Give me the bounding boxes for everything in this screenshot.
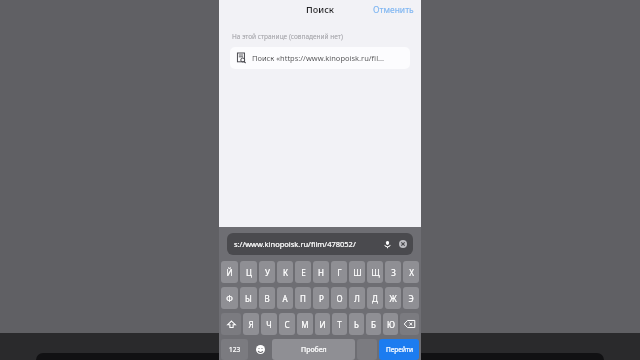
button[interactable]: Х bbox=[403, 261, 419, 283]
button[interactable]: Ь bbox=[349, 313, 364, 335]
button[interactable]: Б bbox=[366, 313, 381, 335]
staticText: Ч bbox=[266, 319, 272, 330]
staticText: Р bbox=[319, 293, 324, 304]
button[interactable]: Ш bbox=[349, 261, 365, 283]
staticText: Ж bbox=[389, 293, 397, 304]
button[interactable]: В bbox=[259, 287, 275, 309]
staticText: Пробел bbox=[301, 345, 327, 355]
staticText: Я bbox=[248, 319, 254, 330]
button[interactable]: Щ bbox=[367, 261, 383, 283]
staticText: М bbox=[301, 319, 309, 330]
staticText: Ы bbox=[245, 293, 252, 304]
staticText: Поиск «https://www.kinopoisk.ru/fil... bbox=[252, 53, 385, 63]
button[interactable]: Н bbox=[313, 261, 329, 283]
staticText: Отменить bbox=[373, 4, 414, 16]
button[interactable]: s://www.kinopoisk.ru/film/478052/ bbox=[227, 233, 413, 255]
staticText: Н bbox=[318, 267, 324, 278]
staticText: Б bbox=[371, 319, 376, 330]
staticText: Ю bbox=[387, 319, 395, 330]
staticText: Г bbox=[337, 267, 342, 278]
button[interactable]: М bbox=[297, 313, 313, 335]
staticText: О bbox=[336, 293, 343, 304]
button[interactable]: Clear text bbox=[399, 240, 407, 248]
staticText: Ь bbox=[354, 319, 359, 330]
staticText: Перейти bbox=[386, 345, 413, 354]
staticText: Й bbox=[226, 267, 233, 278]
button[interactable]: Г bbox=[331, 261, 347, 283]
button[interactable]: К bbox=[277, 261, 293, 283]
staticText: Поиск bbox=[306, 3, 335, 15]
staticText: П bbox=[300, 293, 306, 304]
button[interactable]: Dictation bbox=[383, 240, 392, 249]
button[interactable]: Ц bbox=[240, 261, 257, 283]
button[interactable]: Emoji bbox=[250, 339, 270, 360]
button[interactable]: Ч bbox=[261, 313, 277, 335]
button[interactable]: Ы bbox=[240, 287, 257, 309]
staticText: И bbox=[319, 319, 326, 330]
button[interactable]: О bbox=[331, 287, 347, 309]
button[interactable]: Л bbox=[349, 287, 365, 309]
button[interactable]: Р bbox=[313, 287, 329, 309]
staticText: 123 bbox=[229, 345, 241, 354]
staticText: К bbox=[283, 267, 288, 278]
staticText: У bbox=[265, 267, 270, 278]
button[interactable]: Отменить bbox=[366, 1, 421, 19]
button[interactable]: Ж bbox=[385, 287, 401, 309]
staticText: Д bbox=[372, 293, 378, 304]
staticText: Ш bbox=[353, 267, 362, 278]
staticText: В bbox=[264, 293, 270, 304]
button[interactable]: Ю bbox=[383, 313, 398, 335]
button[interactable]: Й bbox=[221, 261, 238, 283]
staticText: Ф bbox=[226, 293, 233, 304]
staticText: Щ bbox=[371, 267, 380, 278]
button[interactable]: Э bbox=[403, 287, 419, 309]
button[interactable]: Поиск «https://www.kinopoisk.ru/fil... bbox=[230, 47, 410, 69]
button[interactable]: Перейти bbox=[379, 339, 419, 360]
staticText: С bbox=[284, 319, 290, 330]
button[interactable]: 123 bbox=[221, 339, 248, 360]
button[interactable]: С bbox=[279, 313, 295, 335]
button[interactable]: П bbox=[295, 287, 311, 309]
button[interactable]: Backspace bbox=[400, 313, 419, 335]
staticText: Ц bbox=[246, 267, 252, 278]
staticText: На этой странице (совпадений нет) bbox=[232, 32, 343, 41]
button[interactable]: У bbox=[259, 261, 275, 283]
button[interactable]: Пробел bbox=[272, 339, 355, 360]
staticText: Л bbox=[354, 293, 360, 304]
staticText: Е bbox=[301, 267, 306, 278]
button[interactable]: Е bbox=[295, 261, 311, 283]
button[interactable]: Т bbox=[332, 313, 347, 335]
button[interactable]: А bbox=[277, 287, 293, 309]
staticText: А bbox=[282, 293, 288, 304]
button[interactable]: Я bbox=[243, 313, 259, 335]
staticText: Э bbox=[408, 293, 414, 304]
staticText: Т bbox=[337, 319, 342, 330]
staticText: s://www.kinopoisk.ru/film/478052/ bbox=[234, 239, 383, 249]
staticText: З bbox=[391, 267, 396, 278]
button[interactable]: З bbox=[385, 261, 401, 283]
button[interactable]: Shift bbox=[221, 313, 241, 335]
button[interactable]: Ф bbox=[221, 287, 238, 309]
button[interactable]: Д bbox=[367, 287, 383, 309]
button[interactable]: И bbox=[315, 313, 330, 335]
staticText: Х bbox=[409, 267, 414, 278]
